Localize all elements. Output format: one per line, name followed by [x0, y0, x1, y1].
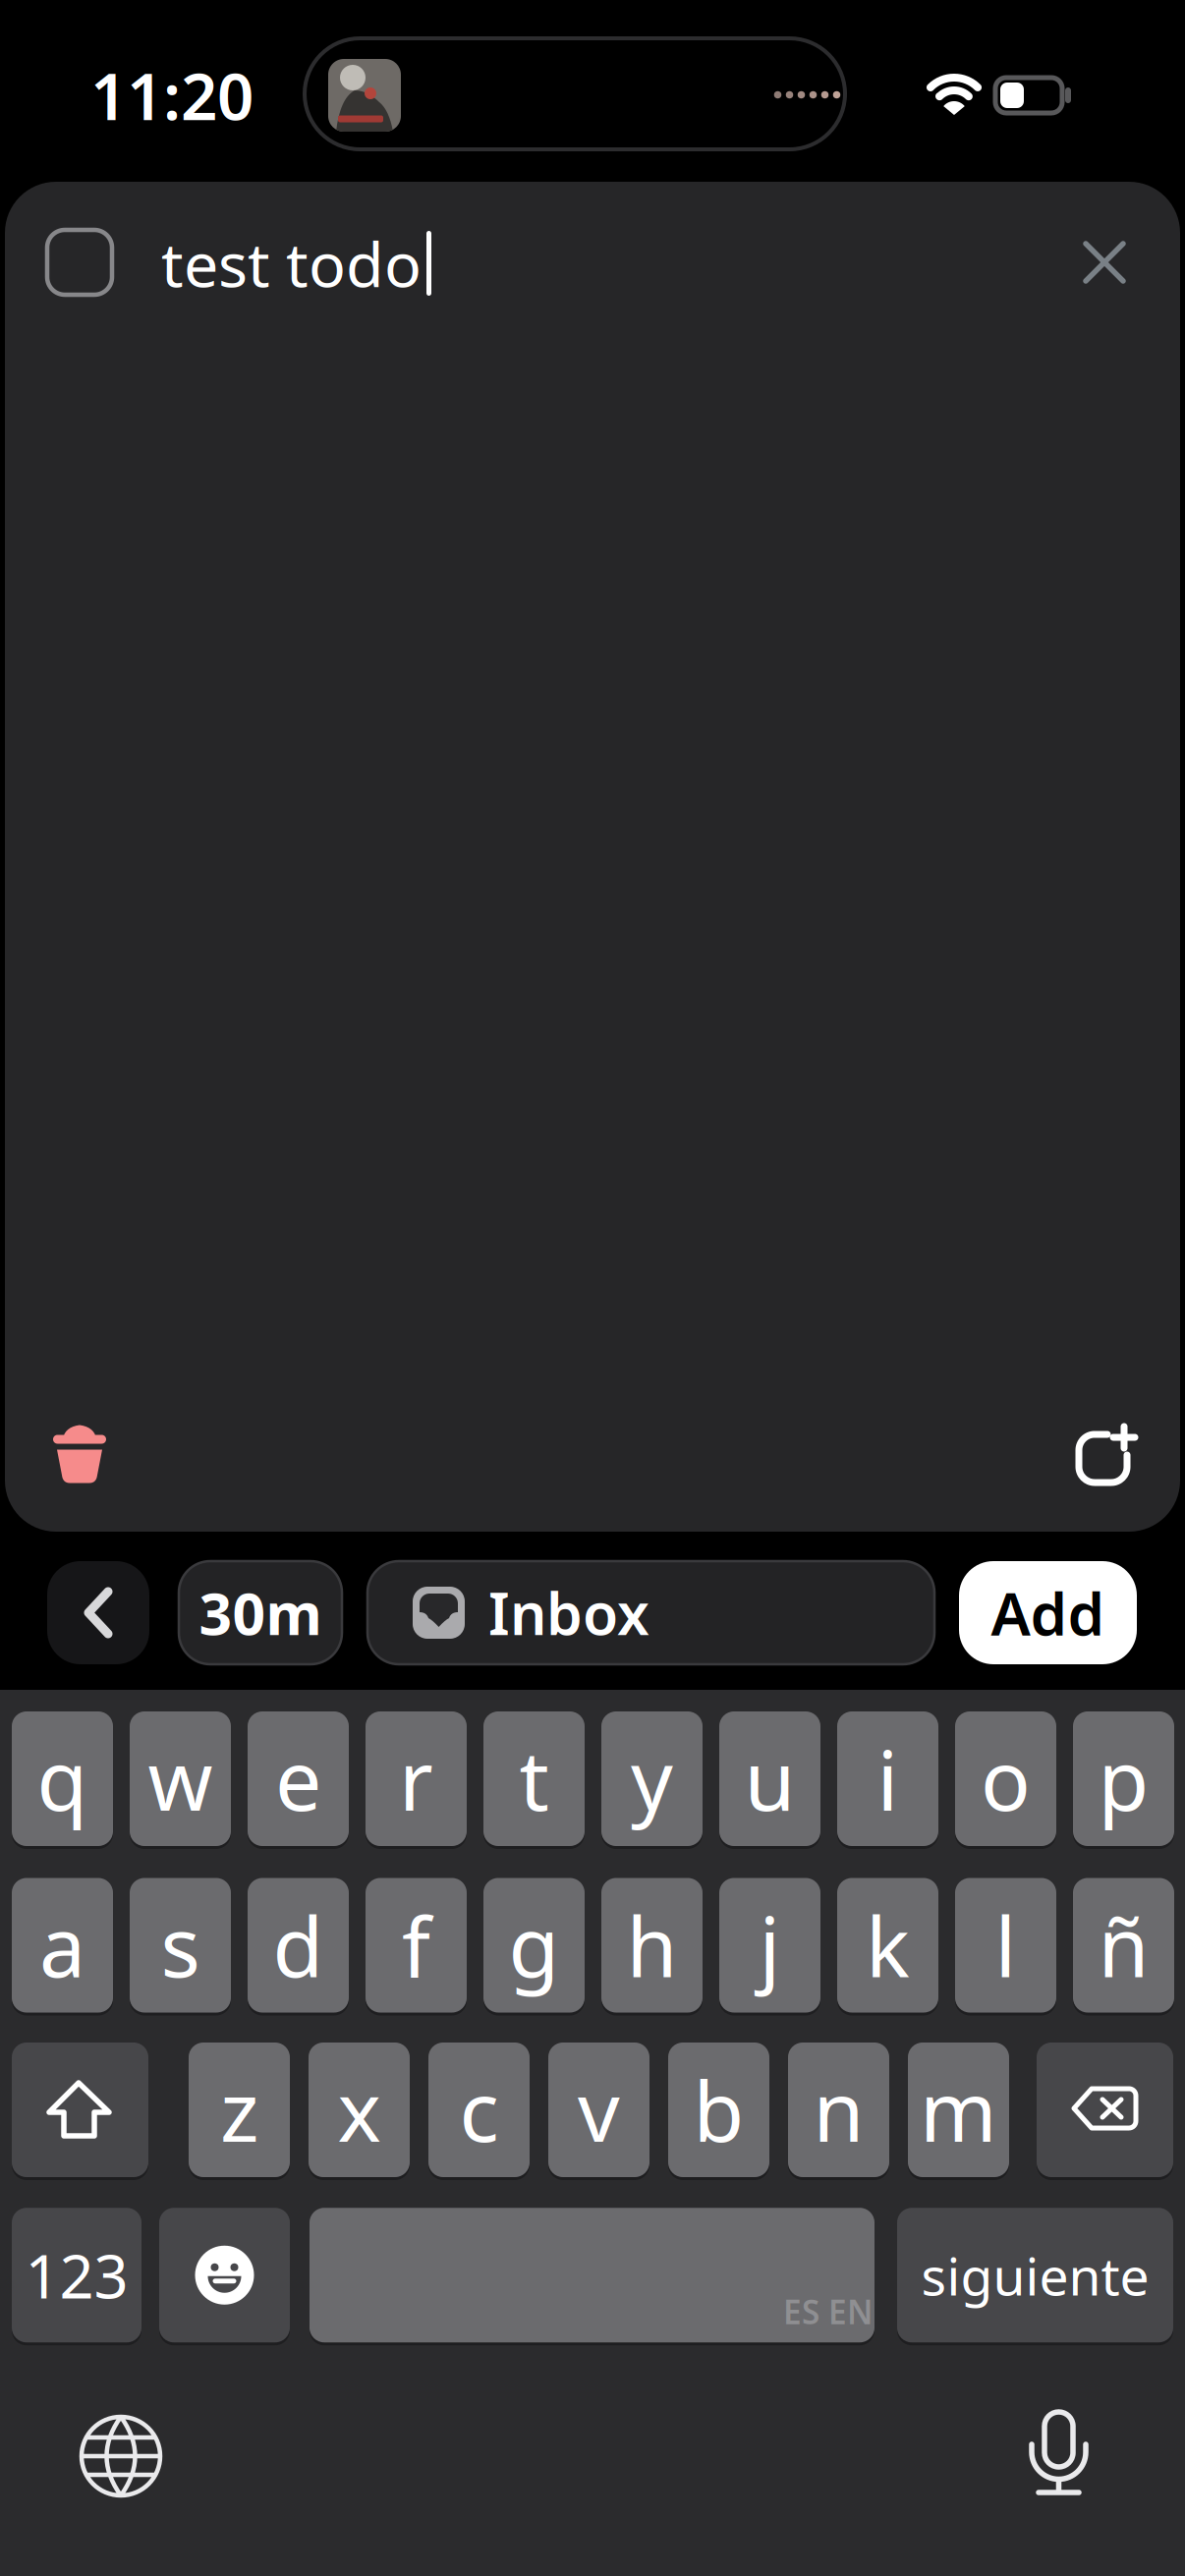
staticText: h [626, 1890, 677, 2000]
staticText: u [744, 1724, 795, 1833]
button[interactable]: p [1073, 1711, 1174, 1846]
button[interactable]: siguiente [897, 2208, 1173, 2342]
button[interactable]: z [189, 2043, 290, 2177]
staticText: f [402, 1890, 430, 2000]
button[interactable] [1031, 2411, 1086, 2496]
button[interactable] [47, 230, 112, 295]
button[interactable]: m [908, 2043, 1009, 2177]
staticText: c [459, 2055, 499, 2165]
button[interactable]: g [483, 1878, 585, 2013]
staticText: q [37, 1724, 88, 1833]
staticText: Add [991, 1574, 1105, 1652]
staticText: m [920, 2055, 997, 2165]
staticText: k [866, 1890, 910, 2000]
staticText: j [759, 1890, 781, 2000]
staticText: e [275, 1724, 321, 1833]
button[interactable]: k [837, 1878, 938, 2013]
button[interactable]: r [366, 1711, 467, 1846]
button[interactable] [1078, 1426, 1135, 1483]
button[interactable]: ñ [1073, 1878, 1174, 2013]
staticText: n [813, 2055, 864, 2165]
button[interactable]: h [601, 1878, 703, 2013]
staticText: Inbox [488, 1574, 649, 1651]
button[interactable]: n [788, 2043, 889, 2177]
button[interactable]: 123 [12, 2208, 141, 2342]
staticText: ES EN [783, 2290, 873, 2333]
button[interactable]: 30m [179, 1561, 342, 1664]
staticText: 123 [25, 2235, 128, 2315]
button[interactable]: w [130, 1711, 231, 1846]
button[interactable]: d [248, 1878, 349, 2013]
button[interactable]: f [366, 1878, 467, 2013]
button[interactable] [47, 1561, 149, 1664]
button[interactable]: a [12, 1878, 113, 2013]
staticText: t [519, 1724, 549, 1833]
button[interactable]: c [428, 2043, 530, 2177]
staticText: test todo [161, 222, 422, 304]
button[interactable]: i [837, 1711, 938, 1846]
button[interactable]: e [248, 1711, 349, 1846]
button[interactable] [53, 1425, 106, 1484]
staticText: l [995, 1890, 1016, 2000]
staticText: i [877, 1724, 899, 1833]
staticText: b [693, 2055, 744, 2165]
button[interactable] [1083, 241, 1126, 284]
button[interactable]: l [955, 1878, 1056, 2013]
staticText: r [399, 1724, 433, 1833]
staticText: 11:20 [90, 53, 254, 138]
staticText: g [508, 1890, 560, 2000]
staticText: d [273, 1890, 324, 2000]
button[interactable]: v [548, 2043, 649, 2177]
staticText: w [148, 1724, 213, 1833]
button[interactable]: x [309, 2043, 410, 2177]
button[interactable]: t [483, 1711, 585, 1846]
staticText: ñ [1098, 1890, 1149, 2000]
button[interactable]: Add [959, 1561, 1137, 1664]
staticText: y [631, 1724, 673, 1833]
button[interactable] [12, 2043, 148, 2177]
staticText: x [338, 2055, 381, 2165]
staticText: 30m [199, 1574, 322, 1651]
staticText: o [981, 1724, 1031, 1833]
staticText: s [161, 1890, 200, 2000]
button[interactable] [77, 2412, 165, 2500]
button[interactable]: s [130, 1878, 231, 2013]
button[interactable]: o [955, 1711, 1056, 1846]
button[interactable]: b [668, 2043, 769, 2177]
staticText: siguiente [921, 2240, 1149, 2310]
staticText: p [1098, 1724, 1149, 1833]
button[interactable]: Inbox [367, 1561, 934, 1664]
staticText: z [220, 2055, 258, 2165]
staticText: a [39, 1890, 85, 2000]
button[interactable]: q [12, 1711, 113, 1846]
button[interactable]: y [601, 1711, 703, 1846]
button[interactable]: u [719, 1711, 820, 1846]
staticText: v [578, 2055, 620, 2165]
button[interactable] [159, 2208, 290, 2342]
button[interactable]: j [719, 1878, 820, 2013]
button[interactable]: ES EN [310, 2208, 875, 2342]
button[interactable] [1037, 2043, 1173, 2177]
